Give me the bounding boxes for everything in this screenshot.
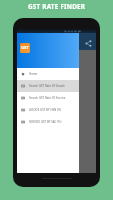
button[interactable]: Search GST Rate Of Service [17,92,79,104]
staticText: Home [29,72,38,76]
staticText: GST RATE FINDER [28,2,86,11]
button[interactable]: SERVICE GST BY SAC (%) [17,116,79,128]
button[interactable]: Home [17,68,79,80]
staticText: SERVICE GST BY SAC (%) [29,120,62,124]
button[interactable]: Share [82,37,95,50]
staticText: Search GST Rate Of Service [29,96,66,100]
staticText: Search GST Rate Of Goods [29,84,65,88]
staticText: GOODS GST BY HSN (%) [29,108,62,112]
button[interactable]: Search GST Rate Of Goods [17,80,79,92]
staticText: GST [21,45,29,51]
button[interactable]: GOODS GST BY HSN (%) [17,104,79,116]
